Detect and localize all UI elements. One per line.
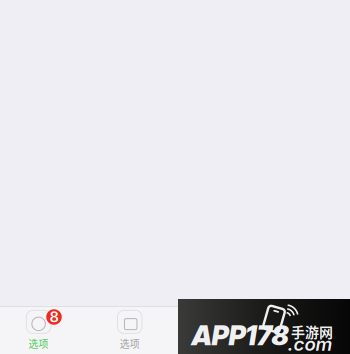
staticText: 选项	[120, 336, 140, 351]
button[interactable]: 选项	[0, 307, 83, 354]
staticText: 手游网	[291, 321, 333, 342]
staticText: 选项	[29, 336, 49, 351]
staticText: APP178	[191, 319, 288, 352]
button[interactable]: 选项	[177, 307, 265, 354]
button[interactable]: 选项	[268, 307, 350, 354]
staticText: 选项	[302, 336, 322, 351]
button[interactable]: 选项	[86, 307, 174, 354]
staticText: 选项	[211, 336, 231, 351]
staticText: .com	[287, 333, 332, 354]
staticText: 8	[49, 308, 58, 326]
